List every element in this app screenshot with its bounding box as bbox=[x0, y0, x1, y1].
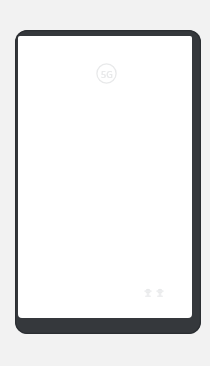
button[interactable]: Placeholder item one bbox=[144, 288, 152, 297]
staticText: 5G bbox=[101, 68, 113, 80]
button[interactable]: Placeholder item two bbox=[156, 288, 164, 297]
button[interactable]: 5G network bbox=[96, 63, 117, 84]
